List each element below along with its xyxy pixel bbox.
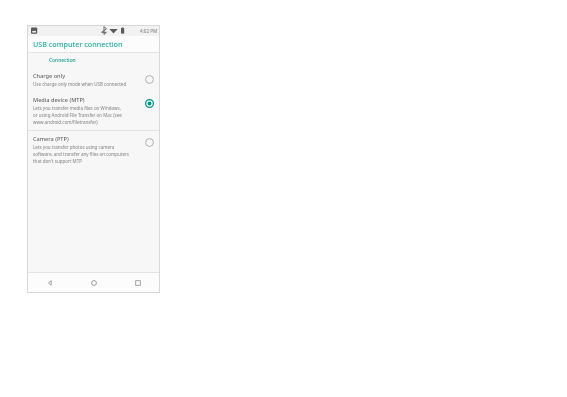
button[interactable]: Recent apps xyxy=(116,273,160,293)
button[interactable]: Not selected xyxy=(144,74,155,85)
button[interactable]: Not selected xyxy=(144,137,155,148)
staticText: 4:02 PM xyxy=(140,28,158,34)
button[interactable]: Selected xyxy=(144,98,155,109)
staticText: Media device (MTP) xyxy=(33,96,85,104)
staticText: Lets you transfer photos using camera xyxy=(33,144,115,150)
button[interactable]: Back xyxy=(27,273,72,293)
staticText: Lets you transfer media files on Windows… xyxy=(33,105,121,111)
button[interactable]: Media device (MTP) xyxy=(27,92,160,130)
staticText: Connection xyxy=(49,57,76,64)
staticText: Charge only xyxy=(33,72,66,80)
staticText: software, and transfer any files on comp… xyxy=(33,151,129,157)
button[interactable]: Home xyxy=(72,273,116,293)
staticText: Use charge only mode when USB connected xyxy=(33,81,127,87)
staticText: www.android.com/filetransfer) xyxy=(33,119,98,125)
staticText: or using Android File Transfer on Mac (s… xyxy=(33,112,122,118)
staticText: Camera (PTP) xyxy=(33,135,69,143)
staticText: USB computer connection xyxy=(33,39,123,49)
staticText: that don't support MTP xyxy=(33,158,82,164)
button[interactable]: Camera (PTP) xyxy=(27,131,160,169)
button[interactable]: Charge only xyxy=(27,68,160,92)
